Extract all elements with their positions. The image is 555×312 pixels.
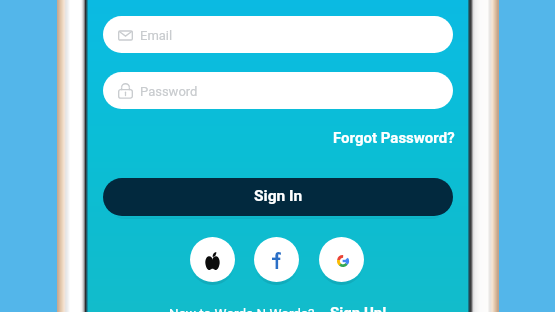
button[interactable]: Password xyxy=(103,72,453,109)
button[interactable]: Sign In xyxy=(103,178,453,216)
staticText: Password xyxy=(140,84,198,99)
staticText: Email xyxy=(140,28,173,43)
staticText: Sign Up! xyxy=(330,304,387,312)
button[interactable]: Sign Up! xyxy=(330,304,387,312)
staticText: Sign In xyxy=(254,187,303,205)
button[interactable]: Email xyxy=(103,16,453,53)
button[interactable]: Sign in with Google xyxy=(319,237,364,282)
staticText: Forgot Password? xyxy=(333,129,455,147)
button[interactable]: Forgot Password? xyxy=(333,129,455,147)
button[interactable]: Sign in with Apple xyxy=(190,237,235,282)
button[interactable]: Sign in with Facebook xyxy=(254,237,299,282)
staticText: New to Words N Words? xyxy=(169,305,315,312)
